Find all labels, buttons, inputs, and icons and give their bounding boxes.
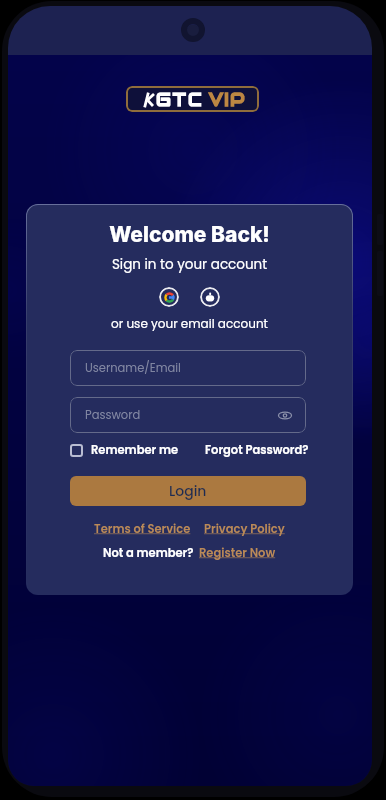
button[interactable]: Privacy Policy — [204, 521, 285, 537]
staticText: GTC — [156, 88, 204, 111]
button[interactable]: Password — [70, 397, 306, 433]
staticText: VIP — [209, 88, 246, 111]
staticText: Username/Email — [85, 360, 181, 376]
button[interactable]: Remember me — [70, 442, 179, 458]
staticText: Privacy Policy — [204, 521, 285, 537]
button[interactable] — [200, 287, 220, 307]
button[interactable]: Username/Email — [70, 350, 306, 386]
staticText: Welcome Back! — [26, 222, 353, 247]
staticText: Forgot Password? — [205, 442, 309, 458]
staticText: GTC — [156, 88, 204, 111]
staticText: Not a member? — [103, 545, 194, 561]
staticText: or use your email account — [26, 315, 353, 332]
staticText: Sign in to your account — [26, 255, 353, 274]
staticText: Password — [85, 407, 141, 423]
button[interactable]: Terms of Service — [94, 521, 191, 537]
staticText: Remember me — [91, 442, 179, 458]
button[interactable] — [159, 287, 179, 307]
button[interactable]: Login — [70, 476, 306, 506]
staticText: Register Now — [199, 545, 276, 561]
staticText: Login — [169, 481, 207, 501]
staticText: VIP — [209, 88, 246, 111]
button[interactable]: Forgot Password? — [205, 442, 309, 458]
staticText: Terms of Service — [94, 521, 191, 537]
button[interactable]: Register Now — [199, 545, 276, 561]
